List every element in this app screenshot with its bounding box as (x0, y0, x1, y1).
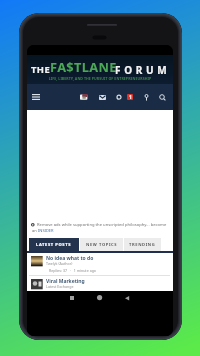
button[interactable]: 1 (127, 94, 133, 100)
button[interactable]: Inbox (78, 89, 90, 105)
button[interactable]: Recent apps (68, 294, 76, 302)
staticText: LATEST POSTS (36, 242, 72, 248)
button[interactable]: Back (123, 294, 131, 302)
staticText: No idea what to do (46, 255, 94, 262)
staticText: NEW TOPICS (86, 242, 118, 248)
button[interactable]: Search (156, 89, 168, 105)
button[interactable]: No idea what to do (27, 254, 173, 275)
staticText: Twelyk (Author) (46, 261, 73, 266)
button[interactable]: Menu (28, 89, 44, 105)
button[interactable]: LATEST POSTS (29, 238, 79, 251)
staticText: Replies: 37 · 1 minute ago (49, 268, 97, 273)
button[interactable]: Home (95, 293, 104, 302)
button[interactable]: TRENDING (124, 238, 161, 251)
staticText: FA$TLANE (50, 58, 117, 75)
staticText: LIFE, LIBERTY, AND THE PURSUIT OF ENTREP… (27, 76, 173, 81)
staticText: THE (31, 63, 51, 76)
staticText: an (32, 228, 38, 233)
staticText: FORUM (115, 63, 171, 77)
button[interactable]: Messages (96, 89, 108, 105)
staticText: Latest Exchange (46, 284, 74, 289)
button[interactable]: Viral Marketing (27, 277, 173, 298)
staticText: TRENDING (129, 242, 156, 248)
staticText: Remove ads while supporting the unscript… (37, 222, 167, 228)
staticText: INSIDER (38, 228, 54, 233)
button[interactable]: Tags (140, 89, 152, 105)
button[interactable]: NEW TOPICS (80, 238, 123, 251)
staticText: 1 (129, 94, 132, 100)
staticText: Viral Marketing (46, 278, 85, 285)
button[interactable]: Alerts (113, 89, 125, 105)
